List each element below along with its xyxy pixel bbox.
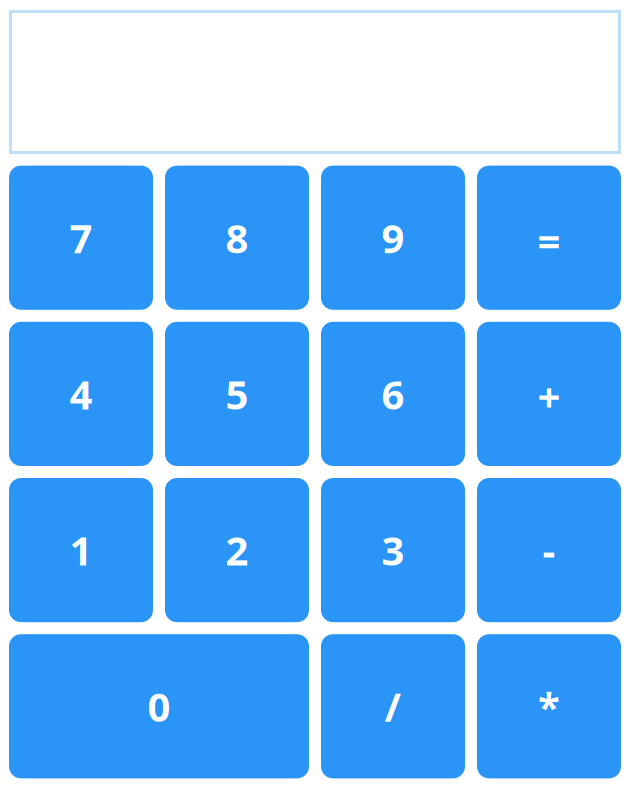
staticText: * xyxy=(538,680,560,733)
button[interactable]: + xyxy=(477,322,621,466)
staticText: 6 xyxy=(381,367,404,420)
staticText: 2 xyxy=(225,523,248,577)
button[interactable]: 4 xyxy=(9,322,153,466)
button[interactable]: 5 xyxy=(165,322,309,466)
staticText: 5 xyxy=(225,367,248,420)
button[interactable]: 2 xyxy=(165,478,309,622)
staticText: 9 xyxy=(381,211,404,264)
staticText: - xyxy=(542,523,555,577)
staticText: 3 xyxy=(381,523,404,577)
staticText: = xyxy=(537,214,560,267)
staticText: + xyxy=(537,369,560,423)
staticText: 7 xyxy=(69,211,92,264)
button[interactable]: 1 xyxy=(9,478,153,622)
button[interactable]: Display xyxy=(9,10,621,154)
button[interactable]: / xyxy=(321,634,465,778)
staticText: 1 xyxy=(69,523,92,577)
staticText: 0 xyxy=(147,680,170,733)
button[interactable]: 9 xyxy=(321,166,465,310)
button[interactable]: 6 xyxy=(321,322,465,466)
staticText: 8 xyxy=(225,211,248,264)
button[interactable]: 3 xyxy=(321,478,465,622)
button[interactable]: = xyxy=(477,166,621,310)
button[interactable]: 7 xyxy=(9,166,153,310)
button[interactable]: 8 xyxy=(165,166,309,310)
staticText: / xyxy=(384,680,401,733)
staticText: 4 xyxy=(69,367,92,420)
button[interactable]: 0 xyxy=(9,634,309,778)
button[interactable]: - xyxy=(477,478,621,622)
button[interactable]: * xyxy=(477,634,621,778)
